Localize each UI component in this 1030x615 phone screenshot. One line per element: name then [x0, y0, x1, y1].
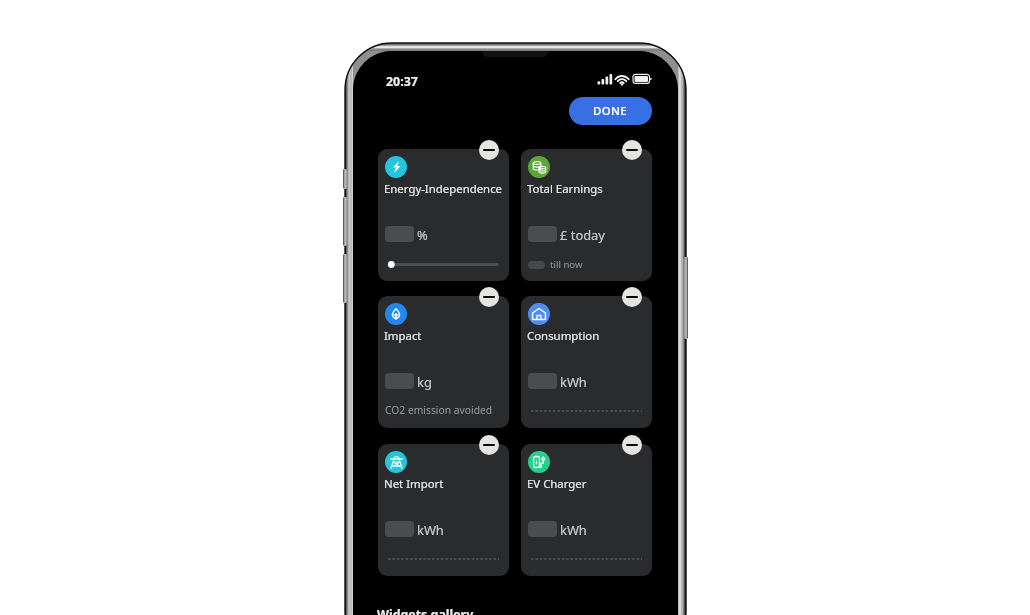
staticText: CO2 emission avoided	[385, 403, 493, 417]
button[interactable]: Remove EV Charger widget	[622, 435, 642, 455]
staticText: DONE	[593, 103, 628, 119]
staticText: kWh	[560, 521, 587, 539]
staticText: till now	[550, 258, 583, 271]
button[interactable]: Total Earnings	[521, 149, 652, 281]
staticText: Impact	[384, 328, 422, 344]
staticText: Energy-Independence	[384, 181, 503, 197]
button[interactable]: Remove Consumption widget	[622, 287, 642, 307]
staticText: EV Charger	[527, 476, 587, 492]
staticText: Widgets gallery	[377, 606, 474, 615]
button[interactable]: Remove Total Earnings widget	[622, 140, 642, 160]
staticText: kWh	[417, 521, 444, 539]
button[interactable]: Impact	[378, 296, 509, 428]
staticText: Net Import	[384, 476, 444, 492]
staticText: kWh	[560, 373, 587, 391]
button[interactable]: EV Charger	[521, 444, 652, 576]
staticText: kg	[417, 373, 432, 391]
button[interactable]: Net Import	[378, 444, 509, 576]
button[interactable]: Remove Impact widget	[479, 287, 499, 307]
staticText: Total Earnings	[527, 181, 603, 197]
button[interactable]: DONE	[569, 97, 652, 125]
button[interactable]: Remove Net Import widget	[479, 435, 499, 455]
staticText: 20:37	[386, 73, 418, 90]
staticText: %	[417, 226, 428, 244]
button[interactable]: Consumption	[521, 296, 652, 428]
staticText: £ today	[560, 226, 605, 244]
button[interactable]: Energy-Independence	[378, 149, 509, 281]
button[interactable]: Remove Energy-Independence widget	[479, 140, 499, 160]
staticText: Consumption	[527, 328, 600, 344]
